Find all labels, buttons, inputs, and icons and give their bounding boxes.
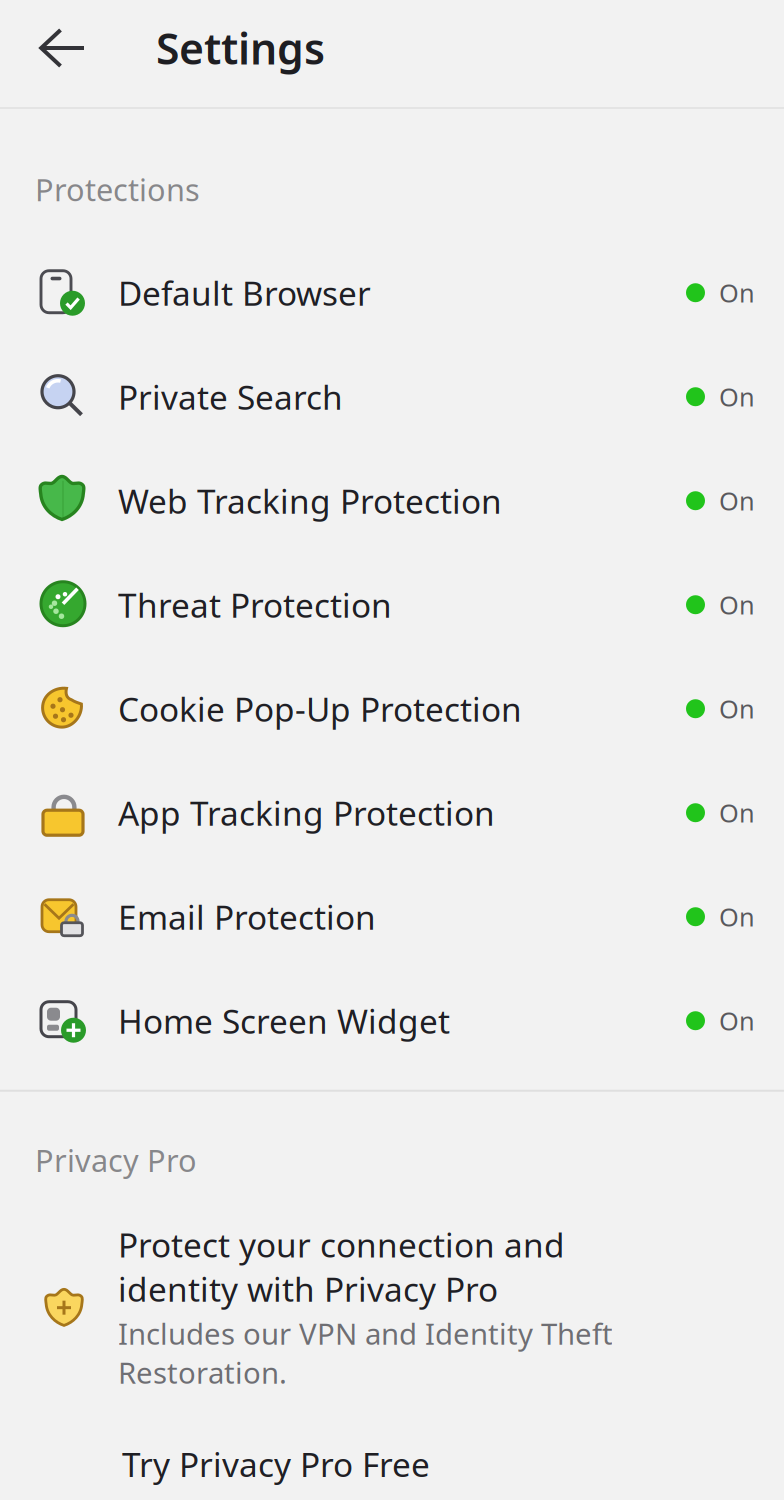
button[interactable]: Protect your connection and identity wit… — [0, 1222, 784, 1392]
staticText: Private Search — [118, 375, 343, 419]
button[interactable]: Cookie Pop-Up Protection — [0, 657, 784, 761]
button[interactable]: Web Tracking Protection — [0, 449, 784, 553]
staticText: Protections — [35, 169, 200, 210]
staticText: On — [719, 484, 755, 517]
staticText: Home Screen Widget — [118, 999, 450, 1043]
staticText: Try Privacy Pro Free — [122, 1442, 430, 1486]
staticText: Privacy Pro — [35, 1140, 197, 1180]
button[interactable]: Back — [26, 11, 100, 85]
button[interactable]: Default Browser — [0, 241, 784, 345]
staticText: Cookie Pop-Up Protection — [118, 687, 522, 731]
staticText: On — [719, 588, 755, 621]
staticText: Includes our VPN and Identity Theft Rest… — [118, 1314, 613, 1392]
staticText: App Tracking Protection — [118, 791, 495, 835]
button[interactable]: Home Screen Widget — [0, 969, 784, 1073]
button[interactable]: Private Search — [0, 345, 784, 449]
button[interactable]: Threat Protection — [0, 553, 784, 657]
staticText: Default Browser — [118, 271, 371, 315]
button[interactable]: Try Privacy Pro Free — [0, 1392, 784, 1500]
staticText: On — [719, 380, 755, 413]
staticText: On — [719, 900, 755, 933]
staticText: Protect your connection and identity wit… — [118, 1222, 565, 1311]
button[interactable]: App Tracking Protection — [0, 761, 784, 865]
staticText: Settings — [156, 20, 325, 76]
staticText: Web Tracking Protection — [118, 479, 502, 523]
staticText: Email Protection — [118, 895, 376, 939]
staticText: On — [719, 276, 755, 309]
button[interactable]: Email Protection — [0, 865, 784, 969]
staticText: On — [719, 692, 755, 725]
staticText: On — [719, 796, 755, 829]
staticText: On — [719, 1004, 755, 1037]
staticText: Threat Protection — [118, 583, 392, 627]
